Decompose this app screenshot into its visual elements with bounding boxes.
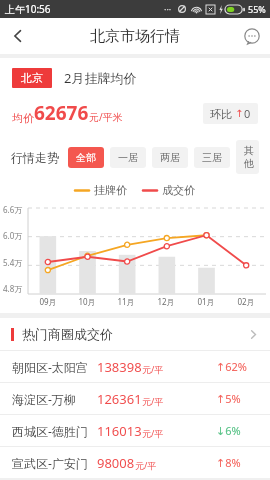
- staticText: 热门商圈成交价: [22, 326, 113, 342]
- staticText: 一居: [118, 151, 138, 164]
- button[interactable]: 一居: [110, 147, 146, 168]
- staticText: 两居: [160, 151, 180, 164]
- staticText: 成交价: [162, 183, 195, 197]
- staticText: 元/平: [142, 363, 164, 375]
- button[interactable]: 朝阳区-太阳宫: [0, 351, 270, 382]
- staticText: 宣武区-广安门: [12, 455, 97, 471]
- staticText: 126361: [97, 390, 142, 408]
- staticText: ↑62%: [216, 359, 258, 374]
- staticText: 其他: [244, 144, 251, 170]
- staticText: 北京市场行情: [90, 27, 180, 46]
- staticText: ↑5%: [216, 391, 258, 406]
- staticText: 4.8万: [3, 283, 23, 294]
- staticText: 12月: [157, 296, 175, 307]
- staticText: 6.0万: [3, 230, 23, 241]
- button[interactable]: 其他: [236, 140, 259, 174]
- staticText: 11月: [117, 296, 135, 307]
- staticText: 上午10:56: [5, 2, 51, 16]
- staticText: 朝阳区-太阳宫: [12, 359, 97, 375]
- button[interactable]: 三居: [194, 147, 230, 168]
- button[interactable]: 全部: [68, 147, 104, 168]
- staticText: 116013: [97, 422, 142, 440]
- staticText: 2月挂牌均价: [64, 69, 137, 87]
- staticText: ↑: [235, 108, 244, 120]
- staticText: 均价: [12, 111, 34, 125]
- staticText: 元/平: [142, 395, 164, 407]
- staticText: ↑8%: [216, 455, 258, 470]
- staticText: ↓6%: [216, 423, 258, 438]
- staticText: 02月: [237, 296, 255, 307]
- button[interactable]: 两居: [152, 147, 188, 168]
- staticText: ···: [164, 3, 172, 15]
- staticText: 全部: [76, 151, 96, 164]
- staticText: 09月: [39, 296, 57, 307]
- staticText: 6.6万: [3, 204, 23, 215]
- staticText: 北京: [21, 71, 43, 85]
- button[interactable]: 宣武区-广安门: [0, 447, 270, 478]
- staticText: 10月: [78, 296, 96, 307]
- button[interactable]: 北京: [21, 71, 43, 85]
- staticText: 0: [244, 106, 251, 121]
- button[interactable]: 环比: [210, 106, 251, 121]
- staticText: 元/平: [135, 459, 157, 471]
- button[interactable]: 海淀区-万柳: [0, 383, 270, 414]
- staticText: 海淀区-万柳: [12, 391, 97, 407]
- staticText: 环比: [210, 106, 235, 121]
- staticText: 三居: [202, 151, 222, 164]
- button[interactable]: 西城区-德胜门: [0, 415, 270, 446]
- staticText: 138398: [97, 358, 142, 376]
- staticText: 5.4万: [3, 257, 23, 268]
- button[interactable]: Back: [0, 18, 36, 54]
- button[interactable]: 热门商圈成交价: [0, 318, 270, 350]
- staticText: 55%: [248, 3, 266, 15]
- staticText: 西城区-德胜门: [12, 423, 97, 439]
- staticText: 62676: [34, 100, 89, 126]
- staticText: 行情走势: [11, 150, 59, 165]
- staticText: 元/平米: [89, 110, 123, 124]
- button[interactable]: Messages: [234, 18, 270, 54]
- staticText: 元/平: [142, 427, 164, 439]
- staticText: 挂牌价: [94, 183, 127, 197]
- staticText: 01月: [197, 296, 215, 307]
- staticText: 98008: [97, 454, 135, 472]
